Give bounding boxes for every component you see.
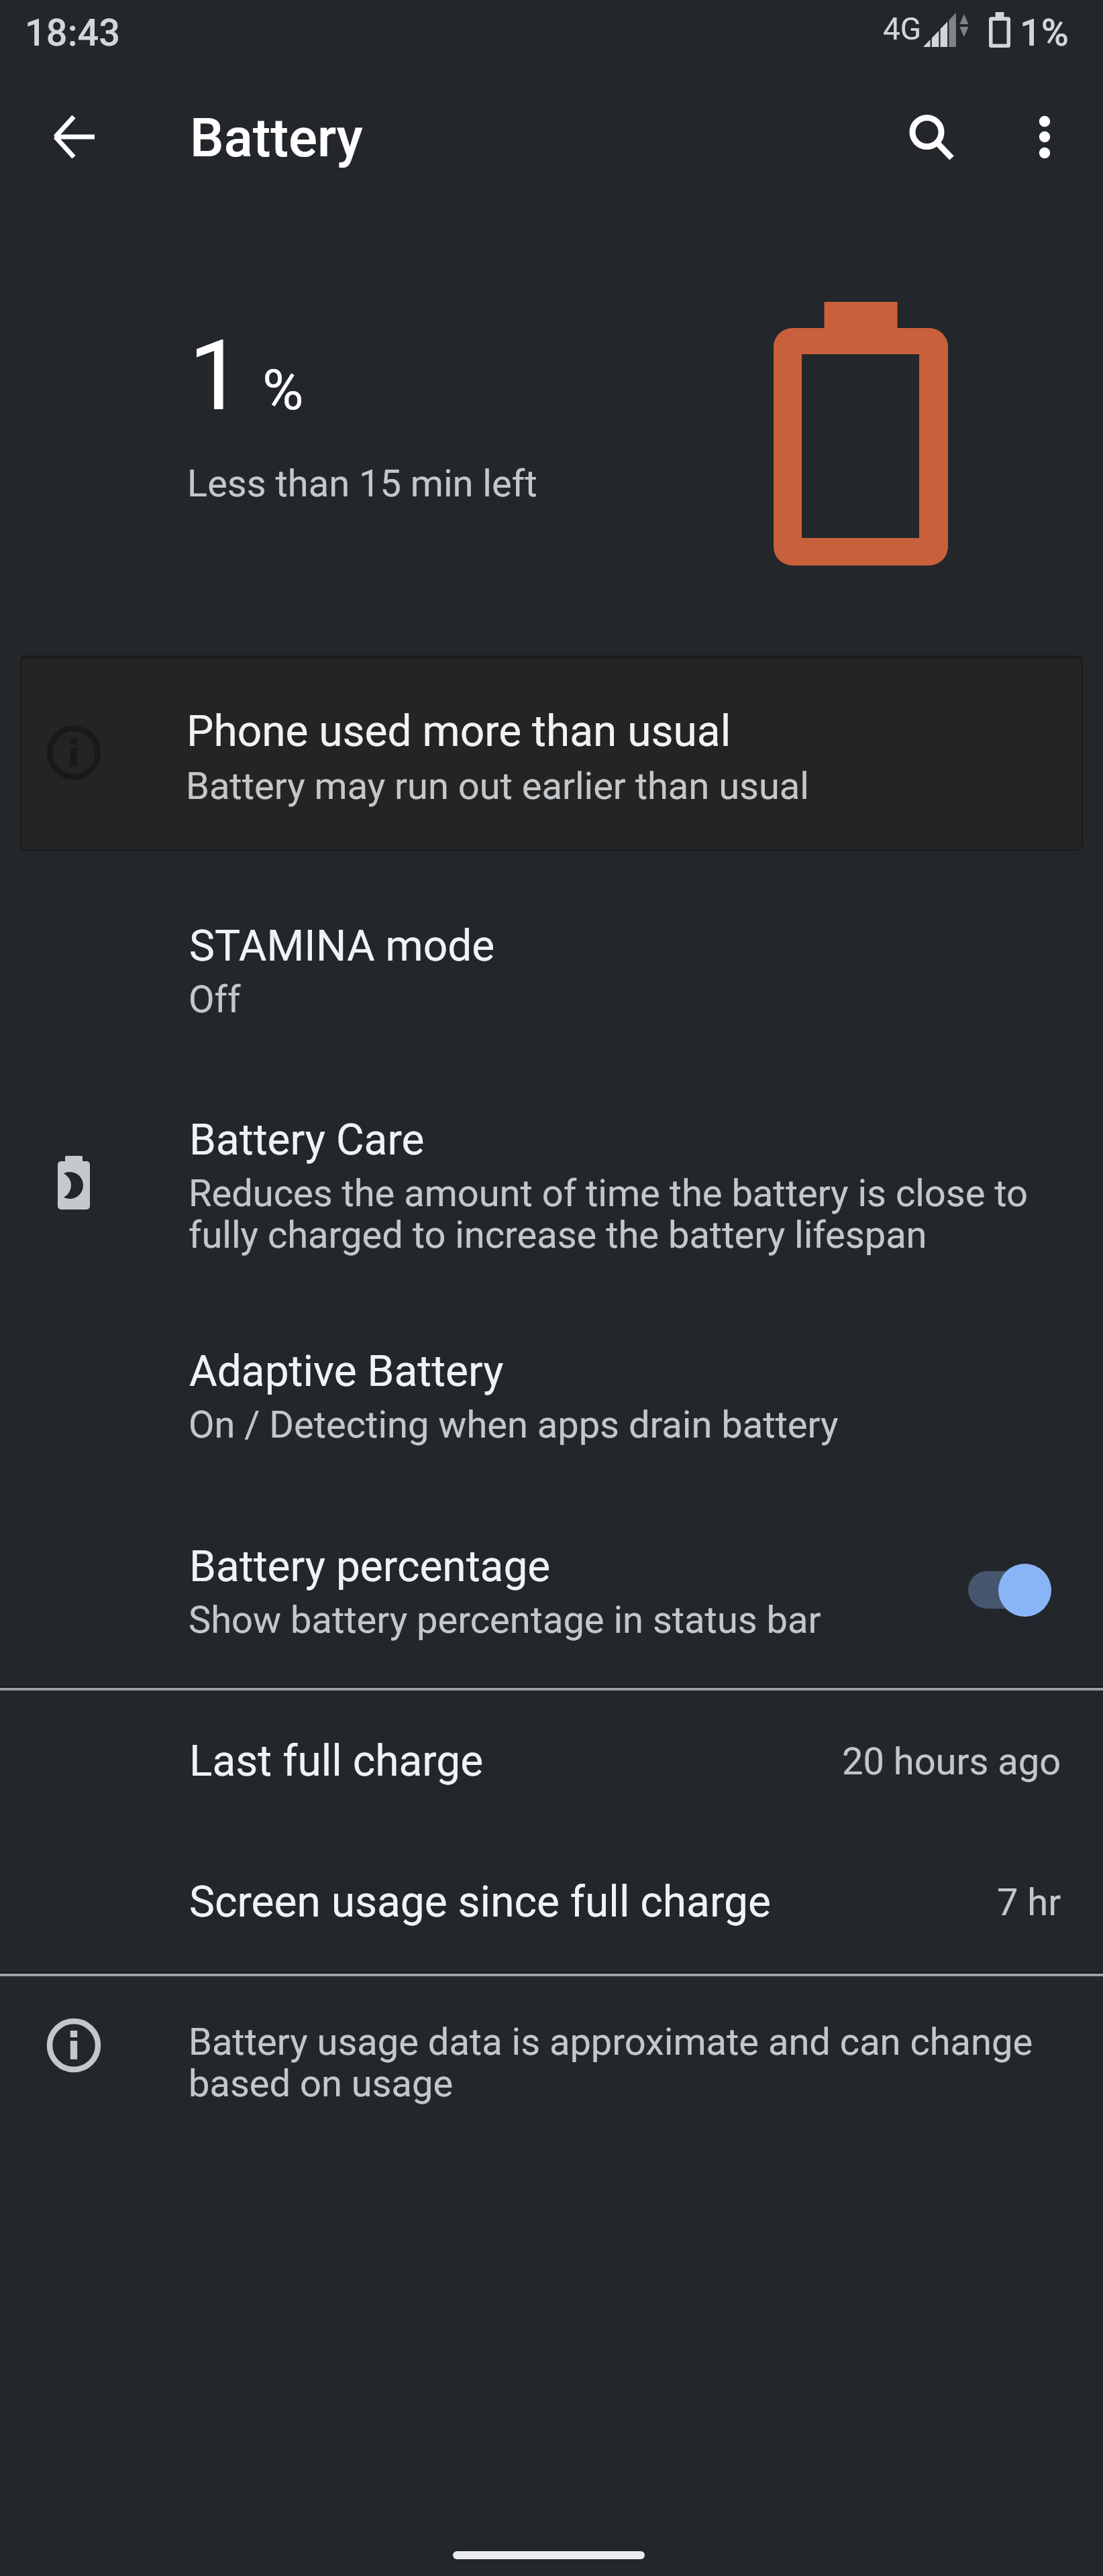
staticText: 18:43 [25, 11, 121, 55]
button[interactable]: Search [890, 101, 963, 173]
staticText: Reduces the amount of time the battery i… [189, 1171, 1028, 1216]
staticText: 1% [1020, 11, 1069, 55]
staticText: STAMINA mode [189, 921, 495, 971]
staticText: Less than 15 min left [187, 462, 537, 506]
button[interactable] [0, 1695, 1103, 1826]
staticText: fully charged to increase the battery li… [189, 1213, 927, 1257]
staticText: 4G [883, 11, 922, 47]
button[interactable] [0, 1835, 1103, 1967]
staticText: Battery may run out earlier than usual [186, 764, 809, 808]
staticText: Battery usage data is approximate and ca… [189, 2020, 1033, 2064]
staticText: On / Detecting when apps drain battery [189, 1403, 839, 1447]
staticText: Battery percentage [189, 1542, 551, 1592]
button[interactable]: More options [1008, 101, 1081, 173]
staticText: Off [189, 977, 241, 1022]
staticText: Battery Care [189, 1115, 425, 1165]
button[interactable]: Navigate up [38, 101, 110, 173]
staticText: 7 hr [997, 1880, 1061, 1925]
button[interactable]: Battery percentage [941, 1546, 1075, 1634]
staticText: % [262, 357, 304, 423]
staticText: Last full charge [189, 1736, 484, 1786]
staticText: Phone used more than usual [187, 706, 731, 757]
staticText: 20 hours ago [842, 1739, 1061, 1784]
staticText: Screen usage since full charge [189, 1877, 771, 1927]
staticText: based on usage [189, 2061, 454, 2106]
button[interactable] [0, 1317, 1103, 1446]
button[interactable] [0, 892, 1103, 1020]
staticText: Show battery percentage in status bar [189, 1598, 821, 1642]
button[interactable] [0, 1085, 1103, 1264]
button[interactable]: Phone used more than usual [21, 658, 1082, 849]
staticText: Adaptive Battery [189, 1346, 504, 1397]
staticText: 1 [189, 319, 243, 433]
button[interactable] [0, 1512, 1103, 1641]
staticText: Battery [190, 107, 363, 170]
